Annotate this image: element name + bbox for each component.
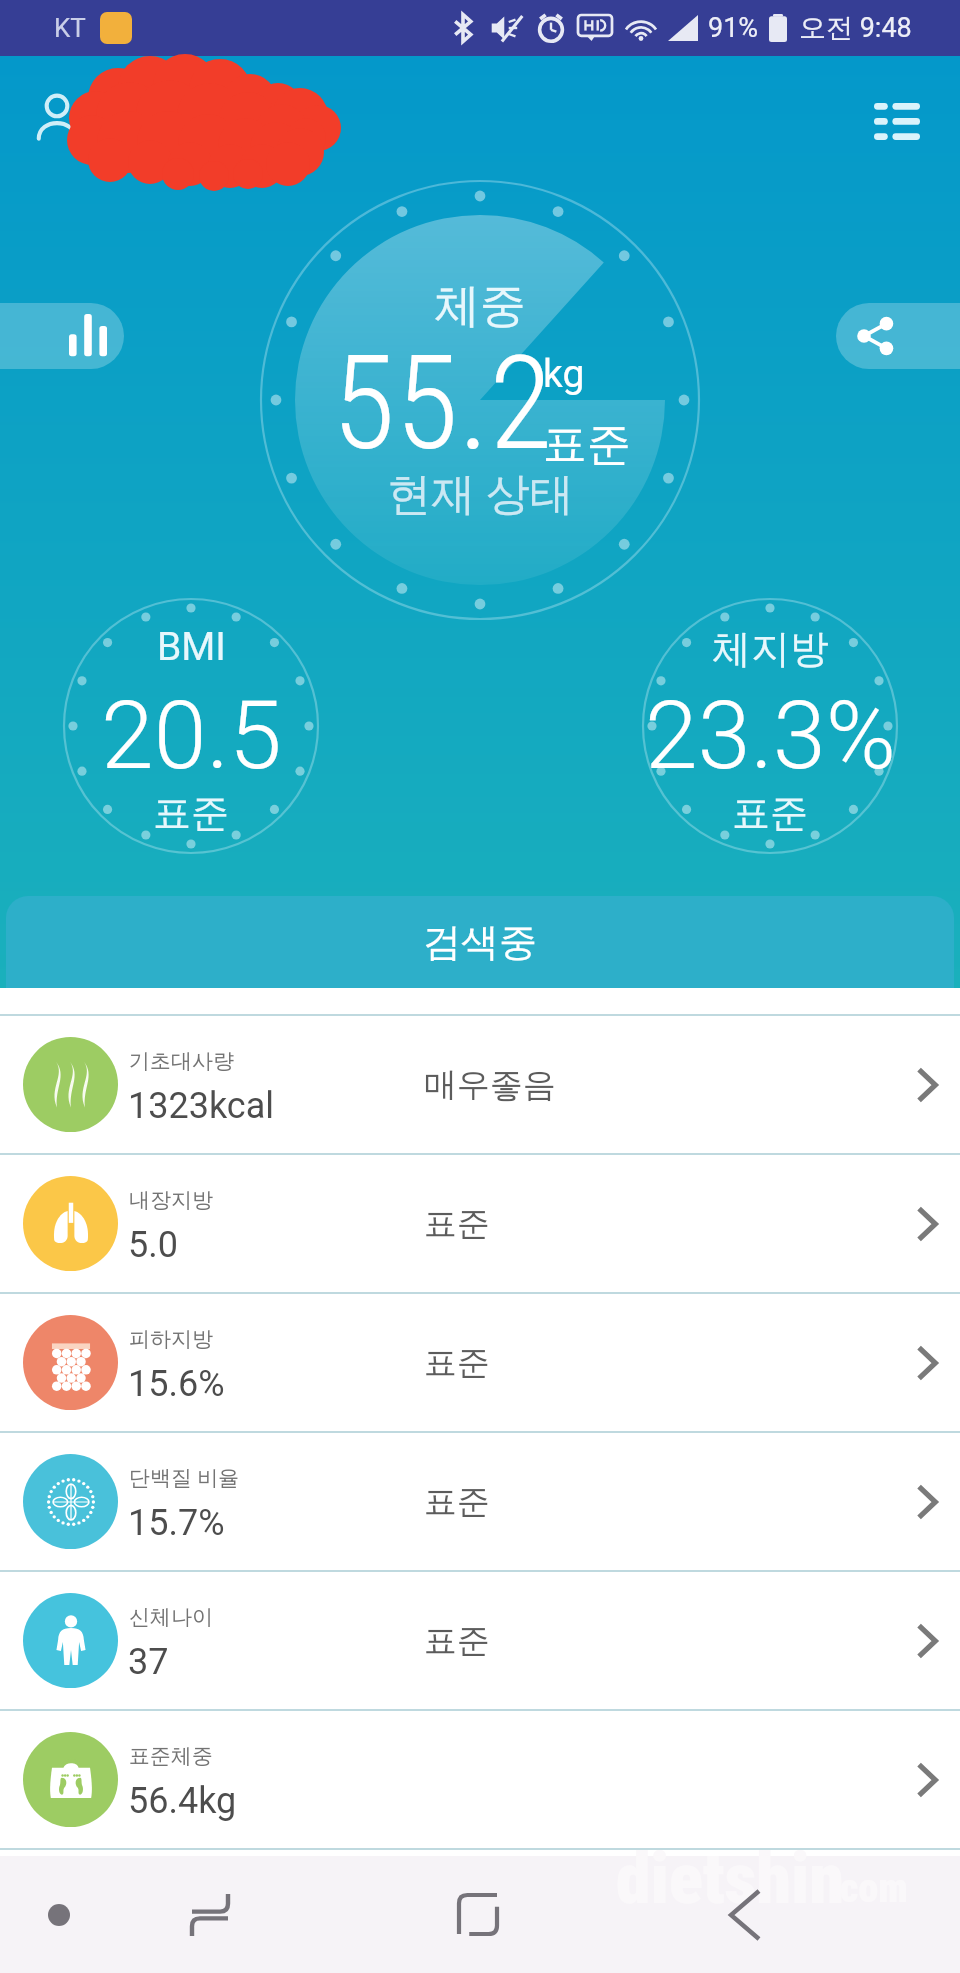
staticText: 표준 xyxy=(732,789,808,837)
staticText: dietshin xyxy=(616,1838,845,1920)
button[interactable]: Share xyxy=(836,303,960,369)
staticText: 1323kcal xyxy=(128,1085,275,1127)
staticText: 20.5 xyxy=(101,680,282,791)
button[interactable]: Menu xyxy=(862,86,932,156)
staticText: 신체나이 xyxy=(129,1604,213,1630)
staticText: 체지방 xyxy=(712,624,829,673)
staticText: 검색중 xyxy=(423,918,537,966)
staticText: KT xyxy=(54,13,86,43)
button[interactable]: Home xyxy=(418,1856,538,1973)
button[interactable]: 신체나이 xyxy=(0,1570,960,1709)
staticText: 55.2 xyxy=(332,327,553,479)
staticText: 5.0 xyxy=(128,1224,178,1266)
staticText: 56.4kg xyxy=(128,1780,237,1822)
staticText: 15.6% xyxy=(128,1363,225,1405)
button[interactable]: 검색중 xyxy=(6,896,954,988)
button[interactable]: Back xyxy=(685,1856,805,1973)
staticText: 단백질 비율 xyxy=(129,1465,240,1491)
staticText: 오전 9:48 xyxy=(799,11,912,45)
staticText: 내장지방 xyxy=(129,1187,213,1213)
staticText: 15.7% xyxy=(128,1502,225,1544)
staticText: 표준 xyxy=(424,1203,490,1245)
staticText: 표준 xyxy=(543,417,631,472)
button[interactable]: 내장지방 xyxy=(0,1153,960,1292)
staticText: 매우좋음 xyxy=(424,1064,556,1106)
button[interactable]: Statistics xyxy=(0,303,124,369)
button[interactable]: 표준체중 xyxy=(0,1709,960,1848)
staticText: 기초대사량 xyxy=(129,1048,234,1074)
staticText: 피하지방 xyxy=(129,1326,213,1352)
staticText: 체중 xyxy=(434,277,526,335)
staticText: 표준 xyxy=(424,1342,490,1384)
staticText: 23.3% xyxy=(645,680,896,791)
button[interactable]: 기초대사량 xyxy=(0,1014,960,1153)
staticText: 현재 상태 xyxy=(387,467,574,522)
staticText: 표준 xyxy=(153,789,229,837)
staticText: 37 xyxy=(128,1641,169,1683)
staticText: 표준 xyxy=(424,1481,490,1523)
staticText: 표준 xyxy=(424,1620,490,1662)
staticText: kg xyxy=(543,351,585,397)
staticText: 표준체중 xyxy=(129,1743,213,1769)
button[interactable]: Profile xyxy=(26,86,88,148)
staticText: 91% xyxy=(708,12,759,44)
staticText: BMI xyxy=(157,624,226,670)
button[interactable]: Recent apps xyxy=(150,1856,270,1973)
button[interactable]: 단백질 비율 xyxy=(0,1431,960,1570)
button[interactable]: 피하지방 xyxy=(0,1292,960,1431)
